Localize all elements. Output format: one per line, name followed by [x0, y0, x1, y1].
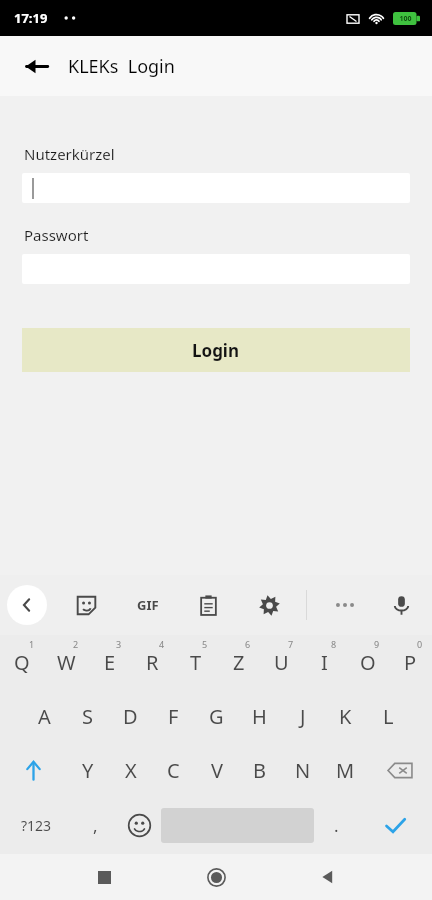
staticText: B [253, 757, 266, 784]
staticText: KLEKs Login [68, 54, 175, 79]
staticText: M [336, 757, 355, 784]
staticText: I [321, 649, 328, 676]
button[interactable]: F [152, 689, 195, 743]
staticText: U [274, 649, 289, 676]
button[interactable]: E [88, 635, 131, 689]
button[interactable]: Settings [250, 586, 288, 624]
button[interactable]: Q [0, 635, 44, 689]
button[interactable]: W [44, 635, 88, 689]
staticText: 8 [331, 638, 337, 650]
staticText: 2 [73, 638, 79, 650]
staticText: ?123 [21, 816, 52, 835]
staticText: Login [192, 339, 240, 362]
staticText: 17:19 [14, 9, 48, 27]
button[interactable]: X [109, 743, 152, 797]
button[interactable]: More options [326, 586, 364, 624]
button[interactable]: Voice input [382, 586, 420, 624]
button[interactable]: A [23, 689, 66, 743]
staticText: X [125, 757, 137, 784]
staticText: 7 [288, 638, 294, 650]
button[interactable]: V [195, 743, 238, 797]
staticText: Y [82, 757, 94, 784]
staticText: , [93, 814, 98, 837]
button[interactable]: , [73, 797, 117, 854]
button[interactable]: Hide toolbar [7, 585, 47, 625]
button[interactable]: Stickers [67, 586, 105, 624]
button[interactable]: O [346, 635, 389, 689]
button[interactable]: Back [12, 42, 60, 90]
staticText: E [104, 649, 116, 676]
staticText: V [211, 757, 223, 784]
staticText: K [339, 703, 352, 730]
button[interactable]: GIF [128, 586, 168, 624]
button[interactable]: Clipboard [189, 586, 227, 624]
button[interactable]: Shift [0, 743, 66, 797]
staticText: . [334, 814, 339, 837]
staticText: W [57, 649, 76, 676]
button[interactable]: S [66, 689, 109, 743]
staticText: H [252, 703, 267, 730]
staticText: 9 [374, 638, 380, 650]
button[interactable]: Y [66, 743, 109, 797]
staticText: S [82, 703, 93, 730]
staticText: T [190, 649, 202, 676]
staticText: Passwort [24, 225, 89, 245]
button[interactable]: Login [22, 328, 410, 372]
staticText: Nutzerkürzel [24, 144, 115, 164]
button[interactable]: C [152, 743, 195, 797]
button[interactable]: P [389, 635, 432, 689]
staticText: 100 [399, 14, 412, 24]
button[interactable]: H [238, 689, 281, 743]
button[interactable]: R [131, 635, 174, 689]
staticText: GIF [137, 596, 159, 614]
button[interactable]: J [281, 689, 324, 743]
staticText: 4 [159, 638, 165, 650]
button[interactable]: L [367, 689, 410, 743]
button[interactable]: Back [306, 855, 350, 899]
staticText: D [123, 703, 138, 730]
staticText: N [295, 757, 311, 784]
staticText: C [167, 757, 180, 784]
staticText: 3 [116, 638, 122, 650]
staticText: Z [233, 649, 245, 676]
staticText: 5 [202, 638, 208, 650]
button[interactable]: . [314, 797, 358, 854]
button[interactable]: T [174, 635, 217, 689]
button[interactable]: I [303, 635, 346, 689]
button[interactable]: G [195, 689, 238, 743]
button[interactable]: B [238, 743, 281, 797]
button[interactable]: Home [194, 855, 238, 899]
staticText: O [360, 649, 376, 676]
staticText: 1 [29, 638, 35, 650]
staticText: L [383, 703, 394, 730]
button[interactable]: Recent apps [82, 855, 126, 899]
staticText: G [209, 703, 224, 730]
button[interactable]: N [281, 743, 324, 797]
button[interactable]: Emoji [117, 797, 161, 854]
staticText: P [404, 649, 417, 676]
button[interactable]: M [324, 743, 367, 797]
staticText: J [300, 703, 306, 730]
staticText: Q [14, 649, 30, 676]
button[interactable]: Z [217, 635, 260, 689]
staticText: 0 [417, 638, 423, 650]
button[interactable] [22, 173, 410, 203]
staticText: 6 [245, 638, 251, 650]
button[interactable]: ?123 [0, 797, 73, 854]
button[interactable]: U [260, 635, 303, 689]
button[interactable]: Backspace [367, 743, 432, 797]
button[interactable]: Enter [358, 797, 432, 854]
staticText: F [168, 703, 179, 730]
button[interactable]: D [109, 689, 152, 743]
staticText: A [38, 703, 51, 730]
staticText: R [146, 649, 159, 676]
button[interactable]: K [324, 689, 367, 743]
